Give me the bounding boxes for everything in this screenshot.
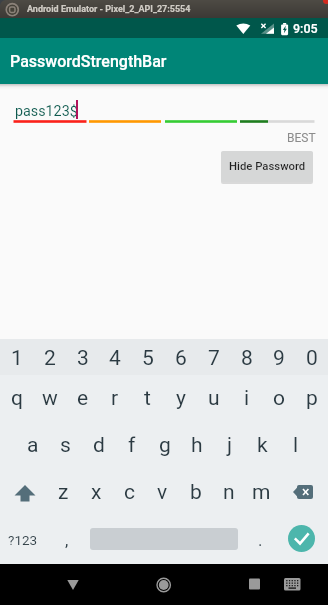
staticText: 1 [11,346,23,371]
staticText: w [42,386,58,411]
staticText: x [91,480,102,505]
button[interactable]: b [179,477,212,507]
staticText: 7 [208,346,220,371]
button[interactable]: ?123 [6,525,39,555]
staticText: 9 [273,346,285,371]
button[interactable]: 0 [295,343,328,373]
button[interactable]: t [131,383,164,413]
staticText: q [11,386,23,411]
button[interactable] [288,525,315,552]
button[interactable]: q [0,383,33,413]
button[interactable]: x [80,477,113,507]
button[interactable]: s [49,430,82,460]
staticText: d [93,433,105,458]
button[interactable]: h [180,430,213,460]
button[interactable] [58,570,88,600]
staticText: r [111,386,119,411]
button[interactable]: k [246,430,279,460]
staticText: PasswordStrengthBar [10,52,167,71]
staticText: a [27,433,39,458]
staticText: Android Emulator - Pixel_2_API_27:5554 [27,4,191,15]
staticText: k [257,433,268,458]
staticText: m [252,480,271,505]
button[interactable]: Hide Password [221,151,313,182]
staticText: v [157,480,168,505]
staticText: e [77,386,89,411]
button[interactable]: e [66,383,99,413]
button[interactable]: 2 [33,343,66,373]
staticText: o [273,386,285,411]
staticText: 4 [109,346,121,371]
button[interactable] [283,477,323,507]
staticText: z [58,480,69,505]
staticText: f [128,433,136,458]
button[interactable]: p [295,383,328,413]
staticText: h [191,433,203,458]
staticText: 9:05 [293,21,318,36]
button[interactable]: j [213,430,246,460]
staticText: b [190,480,202,505]
staticText: p [306,386,318,411]
staticText: g [159,433,171,458]
button[interactable]: 3 [66,343,99,373]
staticText: BEST [287,131,316,145]
staticText: 2 [44,346,56,371]
staticText: 0 [306,346,318,371]
staticText: t [144,386,151,411]
staticText: 6 [175,346,187,371]
button[interactable]: 5 [131,343,164,373]
button[interactable]: 1 [0,343,33,373]
button[interactable] [239,570,269,600]
staticText: j [227,433,233,458]
button[interactable]: r [98,383,131,413]
button[interactable]: 6 [164,343,197,373]
button[interactable]: c [113,477,146,507]
button[interactable]: 8 [230,343,263,373]
button[interactable]: f [115,430,148,460]
button[interactable]: . [244,525,277,555]
button[interactable]: 7 [197,343,230,373]
staticText: ?123 [8,532,38,548]
button[interactable]: o [262,383,295,413]
staticText: 3 [77,346,89,371]
staticText: pass123$ [15,103,78,120]
button[interactable] [5,477,45,507]
button[interactable]: , [50,525,83,555]
button[interactable]: d [82,430,115,460]
button[interactable]: i [230,383,263,413]
button[interactable]: l [279,430,312,460]
button[interactable]: n [212,477,245,507]
button[interactable]: z [47,477,80,507]
staticText: s [60,433,71,458]
staticText: , [65,530,69,550]
button[interactable]: 9 [262,343,295,373]
staticText: n [223,480,235,505]
button[interactable] [149,570,179,600]
staticText: y [176,386,186,411]
button[interactable]: g [148,430,181,460]
button[interactable]: y [164,383,197,413]
staticText: Hide Password [229,160,306,173]
staticText: 8 [241,346,253,371]
button[interactable]: 4 [98,343,131,373]
staticText: c [124,480,135,505]
staticText: u [208,386,220,411]
staticText: i [244,386,250,411]
button[interactable]: m [245,477,278,507]
button[interactable]: a [16,430,49,460]
button[interactable]: w [33,383,66,413]
button[interactable]: v [146,477,179,507]
staticText: l [293,433,299,458]
staticText: . [258,530,263,550]
staticText: 5 [142,346,154,371]
button[interactable]: u [197,383,230,413]
